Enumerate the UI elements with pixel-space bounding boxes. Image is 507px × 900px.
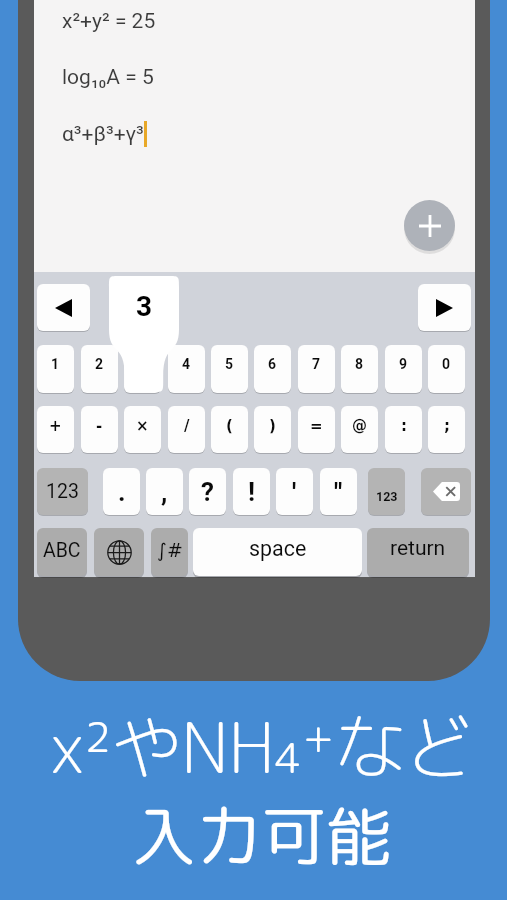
button[interactable]: 6 (254, 345, 291, 393)
button[interactable]: " (320, 468, 357, 515)
button[interactable]: @ (341, 406, 378, 453)
staticText: 123 (376, 489, 398, 504)
staticText: 6 (268, 356, 277, 372)
button[interactable]: - (81, 406, 118, 453)
button[interactable]: 9 (385, 345, 422, 393)
button[interactable]: 1 (37, 345, 74, 393)
button[interactable]: ABC (37, 528, 87, 576)
button[interactable]: × (124, 406, 161, 453)
button[interactable]: = (298, 406, 335, 453)
staticText: ABC (43, 539, 81, 562)
staticText: ? (201, 477, 214, 507)
staticText: x²+y² = 25 (62, 9, 156, 34)
staticText: 2 (95, 356, 104, 372)
staticText: 123 (46, 480, 79, 503)
staticText: 3 (109, 290, 179, 323)
staticText: space (249, 536, 307, 561)
button[interactable]: space (193, 528, 362, 576)
staticText: : (401, 417, 407, 434)
button[interactable]: Previous (37, 284, 90, 331)
button[interactable]: ∫# (151, 528, 188, 576)
button[interactable]: 5 (211, 345, 248, 393)
button[interactable]: ) (254, 406, 291, 453)
button[interactable]: : (385, 406, 422, 453)
staticText: 1 (51, 356, 60, 372)
staticText: ; (444, 417, 450, 434)
staticText: return (390, 536, 446, 561)
staticText: @ (352, 417, 367, 434)
staticText: 9 (399, 356, 408, 372)
staticText: 8 (355, 356, 364, 372)
button[interactable]: ! (233, 468, 270, 515)
button[interactable]: ' (276, 468, 313, 515)
button[interactable]: 7 (298, 345, 335, 393)
staticText: 7 (312, 356, 321, 372)
button[interactable]: 3 (124, 345, 161, 393)
staticText: × (136, 417, 149, 434)
button[interactable]: ? (189, 468, 226, 515)
staticText: . (118, 477, 126, 507)
staticText: x²やNH₄⁺など (9, 698, 507, 796)
button[interactable]: 2 (81, 345, 118, 393)
button[interactable]: return (367, 528, 469, 576)
staticText: ' (292, 477, 297, 507)
button[interactable]: ( (211, 406, 248, 453)
button[interactable]: 123 (368, 468, 405, 515)
staticText: / (184, 417, 190, 434)
staticText: α³+β³+γ³ (62, 122, 144, 147)
staticText: , (161, 477, 168, 507)
button[interactable]: . (103, 468, 140, 515)
staticText: 5 (225, 356, 234, 372)
staticText: 入力可能 (8, 790, 507, 881)
staticText: - (96, 417, 103, 434)
staticText: ! (248, 477, 256, 507)
button[interactable]: 123 (37, 468, 88, 515)
button[interactable]: 4 (168, 345, 205, 393)
staticText: + (49, 417, 62, 434)
staticText: = (310, 417, 323, 434)
button[interactable]: Next (418, 284, 471, 331)
staticText: " (334, 477, 343, 507)
staticText: 4 (182, 356, 191, 372)
button[interactable]: / (168, 406, 205, 453)
staticText: ∫# (157, 539, 183, 561)
staticText: log₁₀A = 5 (62, 65, 154, 90)
button[interactable]: + (37, 406, 74, 453)
staticText: 0 (442, 356, 451, 372)
button[interactable]: , (146, 468, 183, 515)
button[interactable]: ; (428, 406, 465, 453)
button[interactable]: 0 (428, 345, 465, 393)
staticText: ) (269, 417, 276, 434)
button[interactable]: Add (404, 200, 455, 251)
button[interactable]: Delete (421, 468, 471, 515)
button[interactable]: 8 (341, 345, 378, 393)
staticText: ( (226, 417, 233, 434)
button[interactable]: Language (94, 528, 144, 576)
